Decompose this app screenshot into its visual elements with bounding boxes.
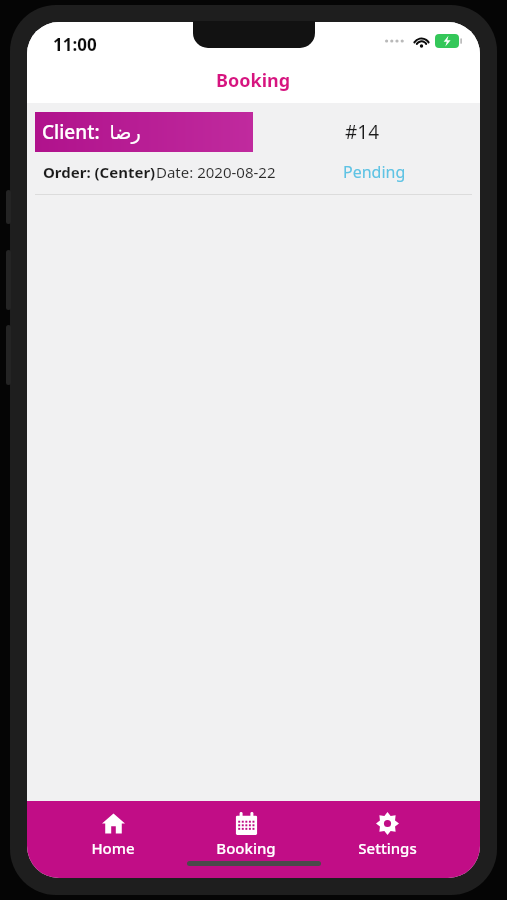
staticText: Booking — [216, 838, 276, 858]
button[interactable]: Settings — [340, 809, 435, 861]
button[interactable]: Booking — [198, 809, 294, 861]
staticText: Booking — [216, 68, 291, 93]
staticText: Client: رضا — [42, 119, 141, 145]
staticText: #14 — [345, 119, 380, 145]
staticText: Home — [91, 838, 135, 858]
button[interactable]: Client: رضا — [27, 103, 480, 195]
staticText: 11:00 — [53, 33, 97, 56]
staticText: Pending — [343, 161, 406, 183]
staticText: Order: (Center) — [43, 162, 156, 182]
button[interactable]: Home — [73, 809, 153, 861]
staticText: Settings — [358, 838, 417, 858]
staticText: Date: 2020-08-22 — [156, 162, 276, 182]
